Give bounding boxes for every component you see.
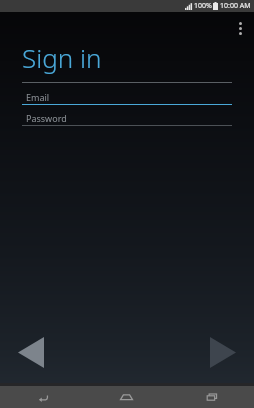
button[interactable]: More options — [229, 15, 251, 41]
staticText: 100% — [194, 1, 212, 11]
button[interactable]: Recent apps — [169, 386, 254, 408]
button[interactable]: Password — [22, 111, 232, 126]
staticText: Sign in — [22, 40, 102, 75]
staticText: 10:00 AM — [220, 1, 251, 11]
button[interactable]: Home — [84, 386, 169, 408]
button[interactable]: Next — [192, 329, 254, 375]
staticText: Email — [26, 91, 50, 103]
button[interactable]: Previous — [0, 329, 62, 375]
staticText: Password — [26, 112, 67, 124]
button[interactable]: Back — [0, 386, 84, 408]
button[interactable]: Email — [22, 90, 232, 105]
